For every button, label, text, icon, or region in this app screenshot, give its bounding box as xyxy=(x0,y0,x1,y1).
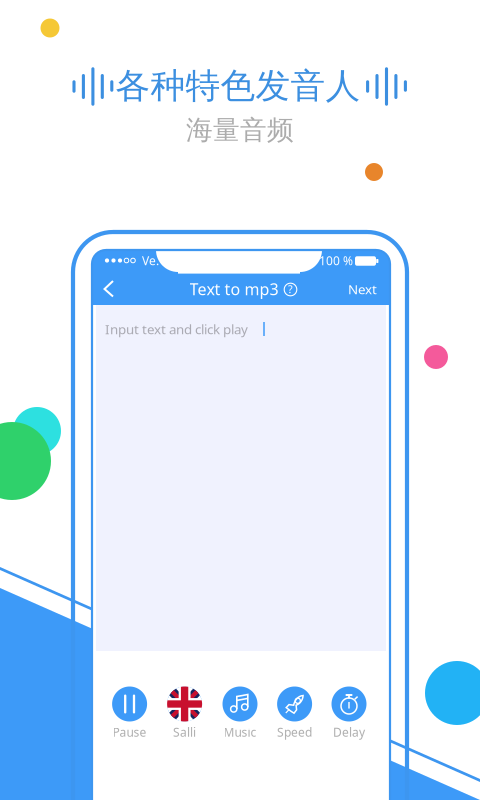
button[interactable]: Delay xyxy=(92,250,390,800)
staticText: Music xyxy=(223,724,256,740)
button[interactable]: Salli xyxy=(92,250,390,800)
staticText: Speed xyxy=(277,724,312,740)
staticText: Ve. xyxy=(142,252,159,268)
staticText: 各种特色发音人 xyxy=(115,65,360,107)
staticText: Input text and click play xyxy=(105,320,248,338)
staticText: Text to mp3 xyxy=(189,278,278,300)
button[interactable]: Help xyxy=(92,250,390,800)
staticText: ? xyxy=(288,282,293,296)
staticText: Salli xyxy=(173,724,196,740)
staticText: Next xyxy=(348,280,377,298)
button[interactable]: Back xyxy=(92,250,390,800)
staticText: Pause xyxy=(113,724,147,740)
staticText: Delay xyxy=(333,724,365,740)
staticText: 100 % xyxy=(319,252,353,268)
button[interactable]: Music xyxy=(92,250,390,800)
button[interactable]: Speed xyxy=(92,250,390,800)
button[interactable]: Next xyxy=(92,250,390,800)
button[interactable]: Pause xyxy=(92,250,390,800)
staticText: 海量音频 xyxy=(186,114,294,146)
